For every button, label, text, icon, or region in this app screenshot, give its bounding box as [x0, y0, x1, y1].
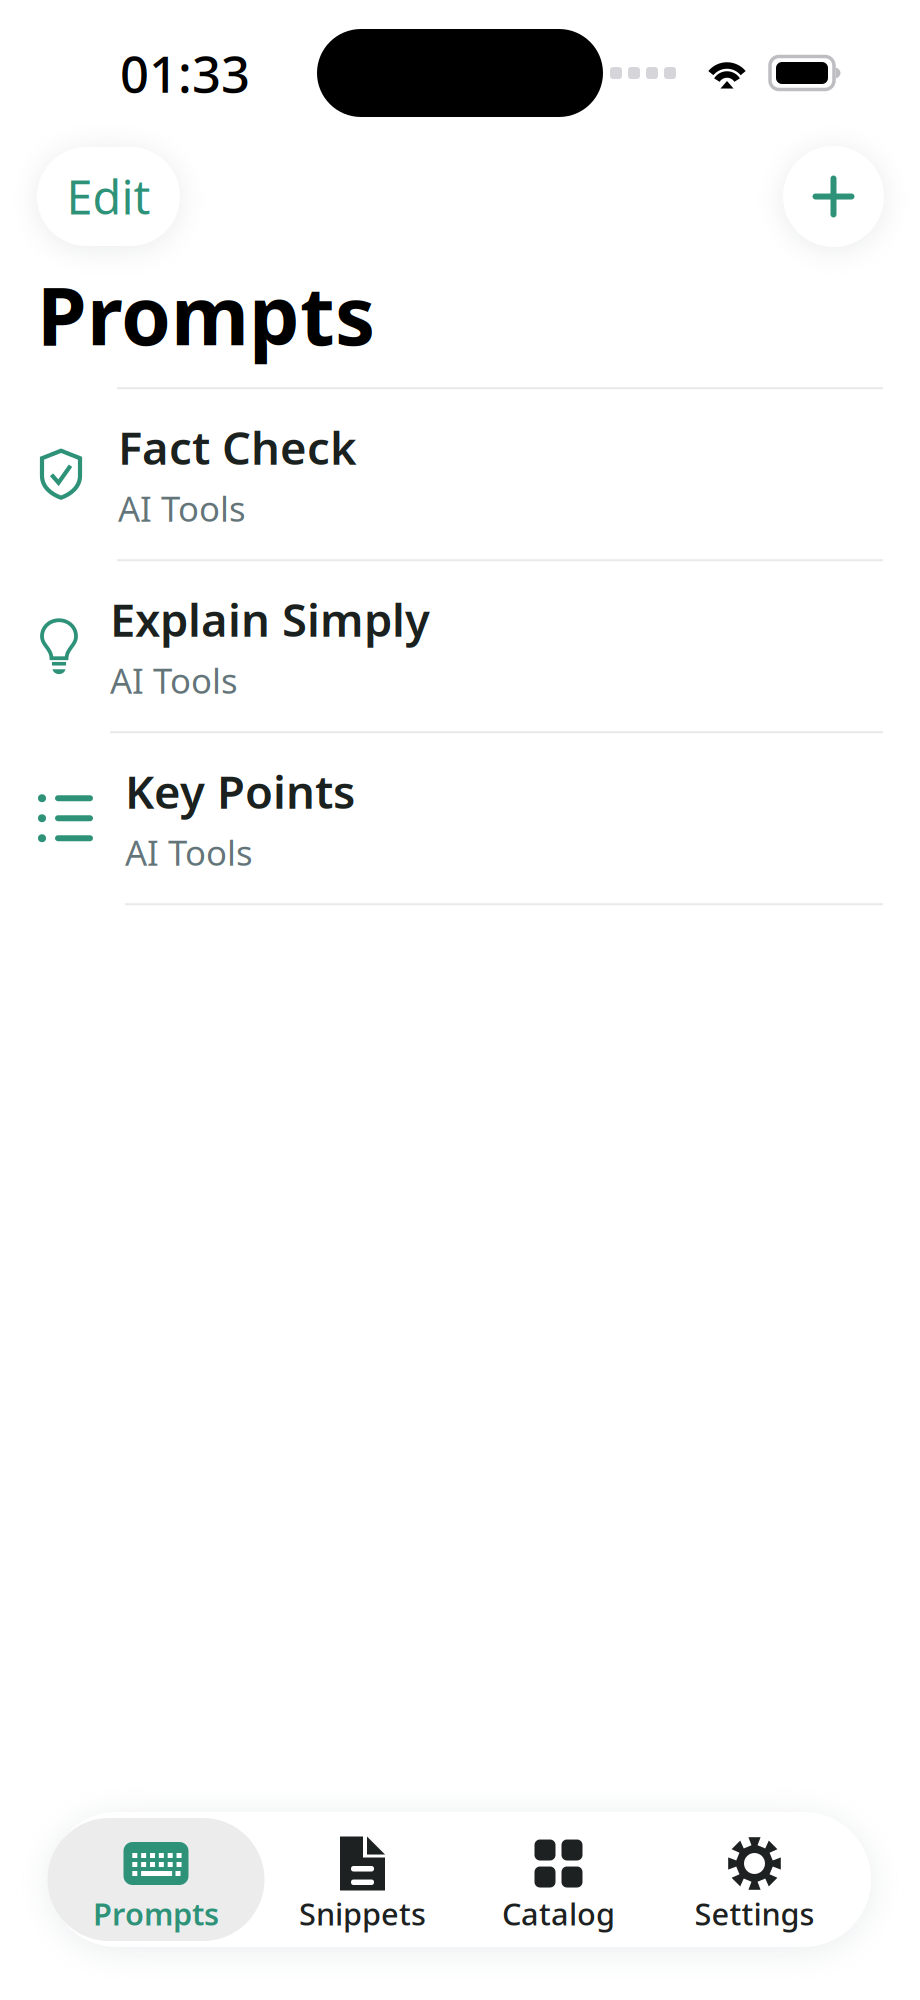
- staticText: AI Tools: [118, 485, 246, 531]
- button[interactable]: Add: [783, 146, 884, 247]
- staticText: Prompts: [37, 261, 375, 367]
- staticText: Catalog: [502, 1893, 615, 1934]
- staticText: Edit: [66, 165, 150, 227]
- button[interactable]: Fact Check: [0, 389, 920, 559]
- staticText: Snippets: [299, 1893, 426, 1934]
- button[interactable]: Snippets: [264, 1818, 460, 1941]
- staticText: AI Tools: [110, 657, 238, 703]
- button[interactable]: Catalog: [460, 1818, 656, 1941]
- button[interactable]: Settings: [656, 1818, 852, 1941]
- button[interactable]: Prompts: [47, 1818, 264, 1941]
- button[interactable]: Key Points: [0, 733, 920, 903]
- staticText: Prompts: [93, 1893, 219, 1934]
- staticText: Key Points: [125, 761, 355, 821]
- staticText: Explain Simply: [110, 589, 430, 649]
- staticText: Fact Check: [118, 417, 357, 477]
- staticText: AI Tools: [125, 829, 253, 875]
- button[interactable]: Edit: [37, 147, 180, 246]
- staticText: 01:33: [120, 39, 250, 107]
- staticText: Settings: [694, 1893, 814, 1934]
- button[interactable]: Explain Simply: [0, 561, 920, 731]
